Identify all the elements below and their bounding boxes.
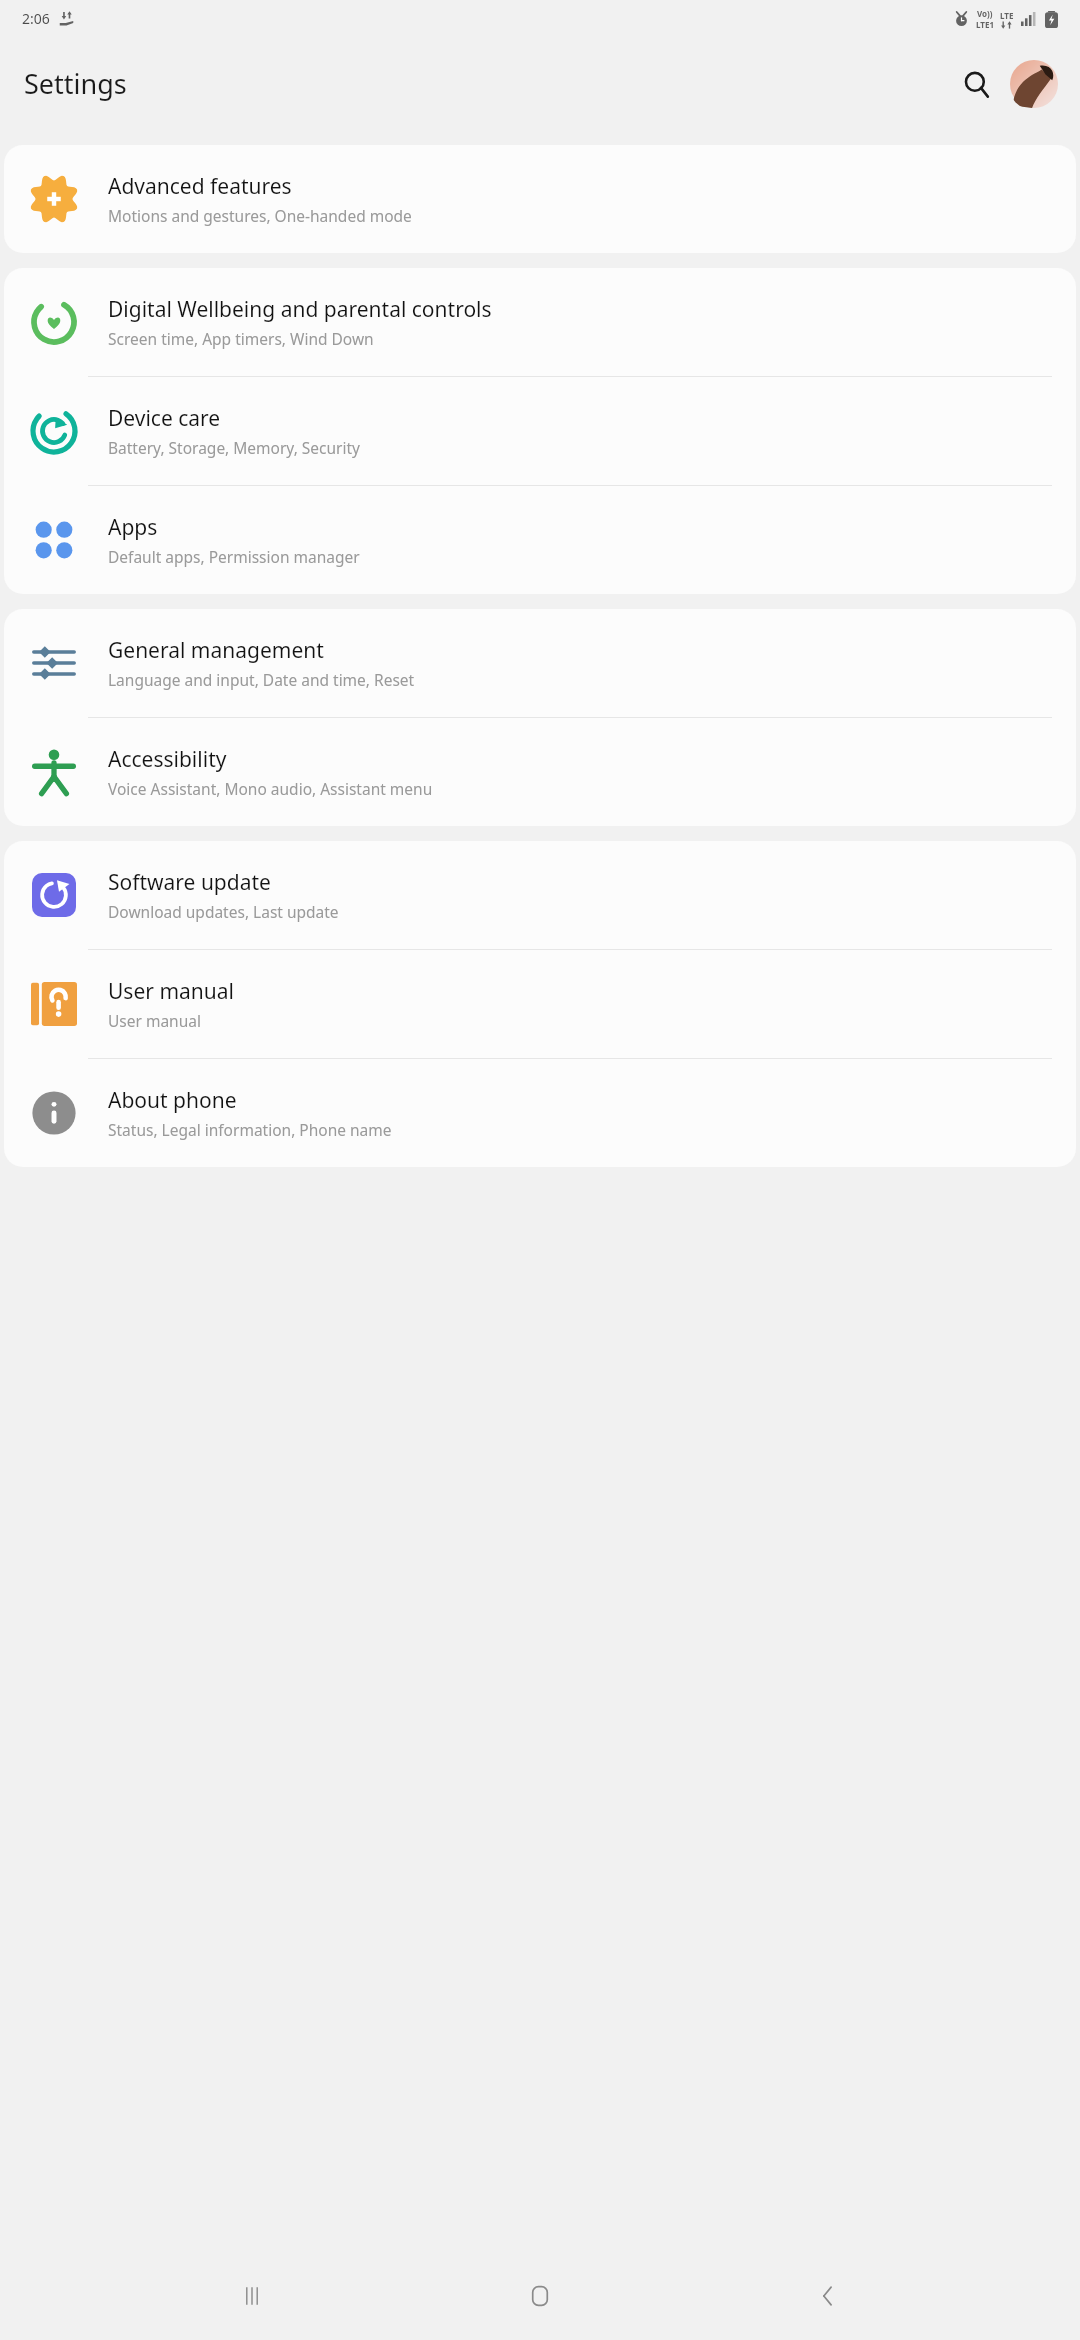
button[interactable]: Accessibility xyxy=(4,718,1076,826)
staticText: Screen time, App timers, Wind Down xyxy=(108,328,374,349)
staticText: Accessibility xyxy=(108,745,227,774)
button[interactable]: Recents xyxy=(216,2260,288,2332)
button[interactable]: Back xyxy=(792,2260,864,2332)
staticText: Download updates, Last update xyxy=(108,901,339,922)
button[interactable]: General management xyxy=(4,609,1076,717)
button[interactable]: Search xyxy=(950,58,1002,110)
staticText: Device care xyxy=(108,404,221,433)
staticText: Language and input, Date and time, Reset xyxy=(108,669,415,690)
staticText: Digital Wellbeing and parental controls xyxy=(108,295,492,324)
staticText: About phone xyxy=(108,1086,237,1115)
staticText: Status, Legal information, Phone name xyxy=(108,1119,392,1140)
staticText: Voice Assistant, Mono audio, Assistant m… xyxy=(108,778,433,799)
button[interactable]: About phone xyxy=(4,1059,1076,1167)
button[interactable]: Digital Wellbeing and parental controls xyxy=(4,268,1076,376)
staticText: Settings xyxy=(24,65,127,102)
staticText: Battery, Storage, Memory, Security xyxy=(108,437,361,458)
button[interactable]: Advanced features xyxy=(4,145,1076,253)
staticText: Advanced features xyxy=(108,172,292,201)
staticText: Apps xyxy=(108,513,158,542)
staticText: LTE xyxy=(1000,10,1014,21)
staticText: User manual xyxy=(108,977,234,1006)
button[interactable]: Software update xyxy=(4,841,1076,949)
staticText: User manual xyxy=(108,1010,201,1031)
button[interactable]: User manual xyxy=(4,950,1076,1058)
button[interactable]: Home xyxy=(504,2260,576,2332)
button[interactable]: Apps xyxy=(4,486,1076,594)
staticText: Motions and gestures, One-handed mode xyxy=(108,205,412,226)
staticText: Software update xyxy=(108,868,271,897)
staticText: 2:06 xyxy=(22,9,50,28)
staticText: Default apps, Permission manager xyxy=(108,546,360,567)
button[interactable]: Account xyxy=(1008,58,1060,110)
staticText: General management xyxy=(108,636,324,665)
staticText: LTE1 xyxy=(976,19,994,30)
button[interactable]: Device care xyxy=(4,377,1076,485)
staticText: Vo)) xyxy=(977,8,993,19)
